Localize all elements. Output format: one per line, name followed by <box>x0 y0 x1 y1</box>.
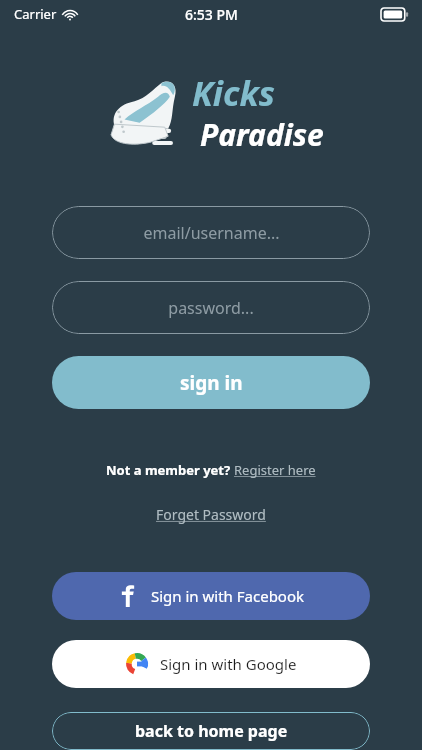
button[interactable]: back to home page <box>52 712 370 750</box>
staticText: sign in <box>180 370 243 396</box>
button[interactable]: password... <box>52 281 370 334</box>
staticText: Sign in with Facebook <box>151 586 305 606</box>
staticText: Not a member yet? <box>106 461 234 479</box>
button[interactable]: Sign in with Google <box>52 640 370 688</box>
staticText: password... <box>168 297 254 319</box>
button[interactable]: Sign in with Facebook <box>52 572 370 620</box>
staticText: back to home page <box>135 720 288 742</box>
staticText: Forget Password <box>156 505 266 524</box>
staticText: Kicks <box>192 70 275 116</box>
staticText: Carrier <box>14 5 57 23</box>
button[interactable]: Register here <box>234 461 316 479</box>
button[interactable]: sign in <box>52 356 370 409</box>
staticText: Register here <box>234 461 316 479</box>
staticText: Paradise <box>200 114 324 152</box>
button[interactable]: Forget Password <box>156 505 266 524</box>
staticText: Sign in with Google <box>160 654 297 674</box>
staticText: email/username... <box>143 222 280 244</box>
staticText: 6:53 PM <box>185 5 238 24</box>
button[interactable]: email/username... <box>52 206 370 259</box>
